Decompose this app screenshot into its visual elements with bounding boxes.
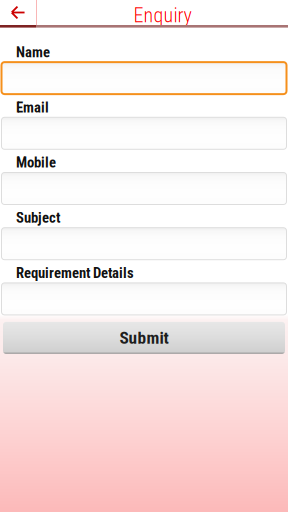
button[interactable]: Back — [0, 0, 36, 25]
staticText: Enquiry — [133, 4, 191, 27]
staticText: Subject — [16, 209, 60, 226]
staticText: Submit — [119, 328, 168, 348]
staticText: Name — [16, 44, 50, 61]
button[interactable]: Submit — [0, 322, 288, 354]
staticText: Requirement Details — [16, 264, 134, 282]
button[interactable]: Enquiry — [37, 0, 288, 25]
staticText: Email — [16, 99, 49, 116]
staticText: Mobile — [16, 154, 56, 171]
